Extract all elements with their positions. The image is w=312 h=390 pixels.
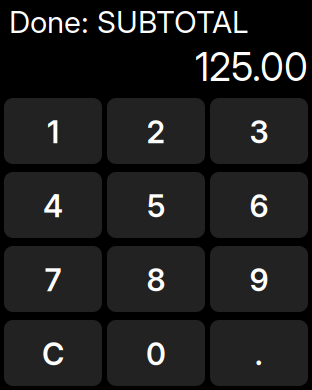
staticText: 4 <box>43 187 63 224</box>
staticText: C <box>42 335 64 372</box>
staticText: . <box>254 335 263 372</box>
staticText: Done: SUBTOTAL <box>9 4 249 40</box>
button[interactable]: 8 <box>107 246 205 312</box>
staticText: 6 <box>249 187 268 224</box>
button[interactable]: Done: SUBTOTAL <box>9 0 249 44</box>
button[interactable]: 2 <box>107 98 205 164</box>
button[interactable]: 9 <box>210 246 308 312</box>
staticText: 8 <box>146 261 165 298</box>
staticText: 0 <box>146 335 166 372</box>
button[interactable]: 6 <box>210 172 308 238</box>
button[interactable]: 0 <box>107 320 205 386</box>
staticText: 2 <box>146 113 165 150</box>
button[interactable]: 4 <box>4 172 102 238</box>
staticText: 3 <box>249 113 268 150</box>
button[interactable]: 1 <box>4 98 102 164</box>
staticText: 1 <box>47 113 59 150</box>
staticText: 125.00 <box>195 44 308 90</box>
button[interactable]: 7 <box>4 246 102 312</box>
button[interactable]: 3 <box>210 98 308 164</box>
staticText: 7 <box>44 261 61 298</box>
button[interactable]: . <box>210 320 308 386</box>
staticText: 9 <box>249 261 268 298</box>
button[interactable]: 5 <box>107 172 205 238</box>
staticText: 5 <box>147 187 165 224</box>
button[interactable]: C <box>4 320 102 386</box>
